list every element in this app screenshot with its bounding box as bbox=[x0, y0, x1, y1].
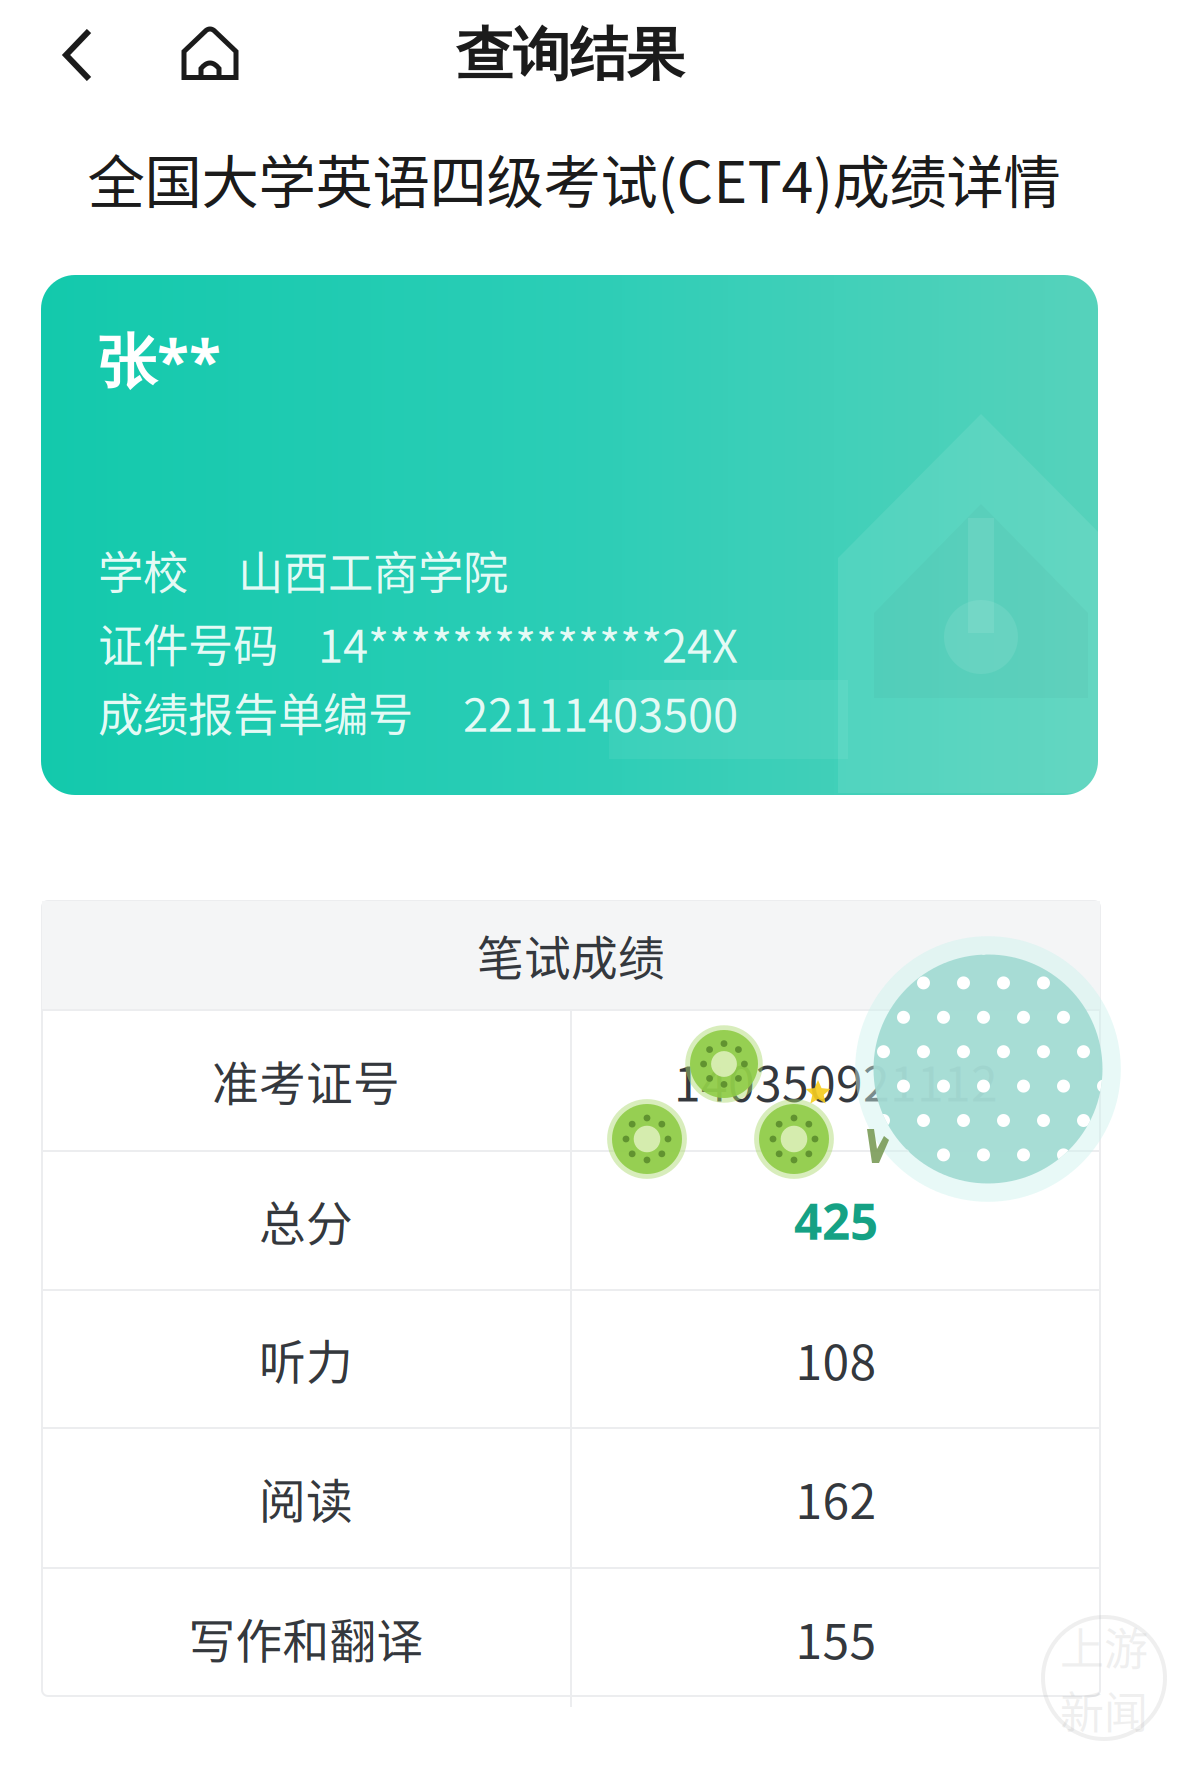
button[interactable]: 首页 bbox=[164, 8, 256, 98]
staticText: 上游 bbox=[1060, 1614, 1148, 1678]
staticText: 准考证号 bbox=[212, 1047, 400, 1114]
staticText: 新闻 bbox=[1060, 1678, 1148, 1742]
staticText: 155 bbox=[795, 1603, 876, 1673]
staticText: 108 bbox=[795, 1324, 876, 1394]
staticText: 140350921112 bbox=[674, 1046, 998, 1115]
staticText: 听力 bbox=[259, 1325, 353, 1393]
staticText: 425 bbox=[794, 1187, 878, 1254]
staticText: 全国大学英语四级考试(CET4)成绩详情 bbox=[87, 136, 1060, 219]
staticText: 证件号码 14**************24X bbox=[98, 610, 738, 676]
staticText: 张** bbox=[98, 320, 221, 400]
staticText: 笔试成绩 bbox=[477, 921, 665, 989]
button[interactable]: 返回 bbox=[32, 10, 124, 100]
staticText: 162 bbox=[795, 1463, 876, 1533]
staticText: 阅读 bbox=[259, 1464, 353, 1532]
staticText: 总分 bbox=[259, 1187, 353, 1254]
staticText: 成绩报告单编号 22111403500 bbox=[98, 679, 738, 745]
staticText: 查询结果 bbox=[456, 19, 684, 91]
staticText: 写作和翻译 bbox=[188, 1604, 423, 1672]
staticText: 学校 山西工商学院 bbox=[98, 537, 508, 603]
